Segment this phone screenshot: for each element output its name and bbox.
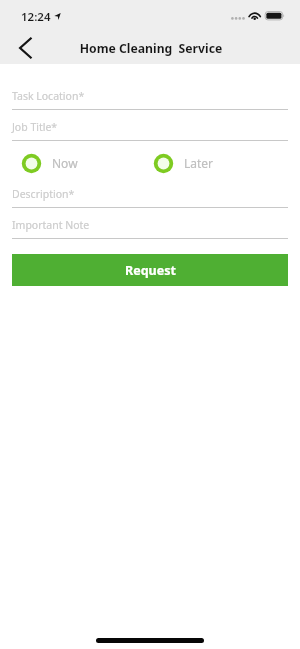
staticText: Now	[52, 155, 78, 171]
button[interactable]: Request	[12, 254, 288, 286]
button[interactable]: Now	[21, 151, 78, 176]
button[interactable]: Important Note	[12, 219, 288, 239]
staticText: Later	[184, 155, 214, 171]
button[interactable]: Description*	[12, 188, 288, 208]
staticText: Task Location*	[12, 89, 85, 103]
button[interactable]: Task Location*	[12, 90, 288, 110]
staticText: Description*	[12, 187, 75, 201]
button[interactable]: Later	[153, 151, 214, 176]
staticText: Home Cleaning Service	[1, 40, 300, 57]
button[interactable]: Job Title*	[12, 121, 288, 141]
staticText: Job Title*	[12, 120, 58, 134]
staticText: Request	[125, 262, 176, 279]
staticText: Important Note	[12, 218, 90, 232]
staticText: 12:24	[21, 9, 51, 25]
button[interactable]: Back	[6, 29, 40, 65]
